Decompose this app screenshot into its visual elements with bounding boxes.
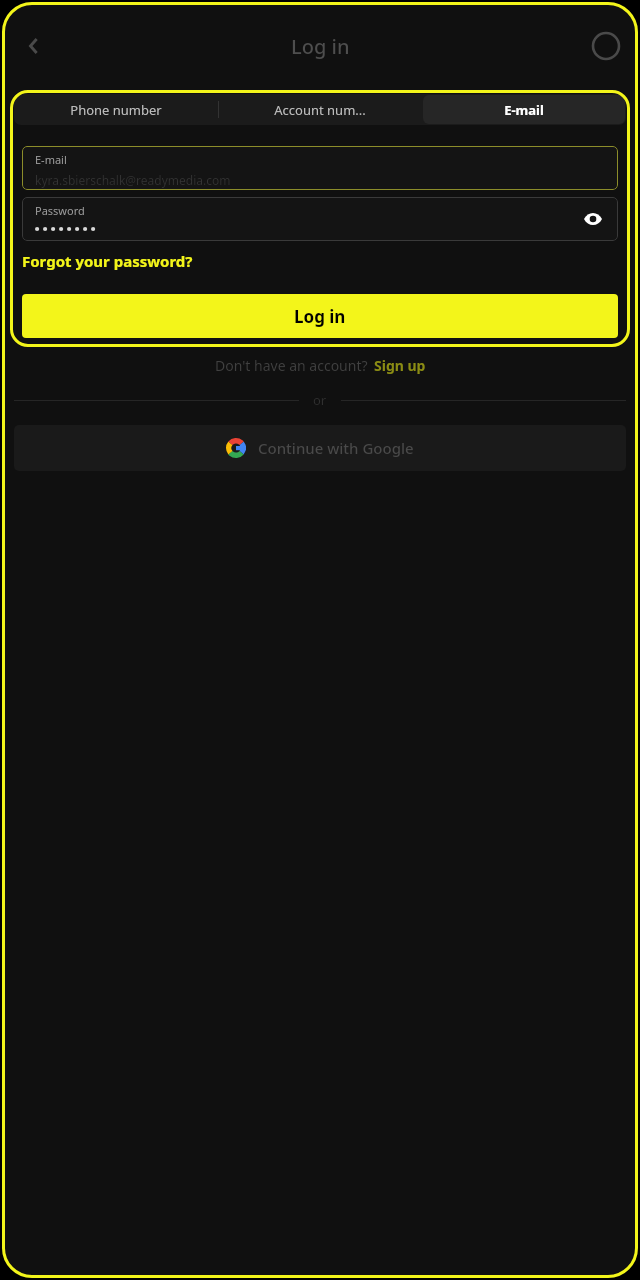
button[interactable]: Log in: [22, 294, 618, 338]
staticText: Account num...: [274, 101, 366, 119]
staticText: Password: [35, 203, 85, 218]
button[interactable]: Sign up: [374, 356, 426, 375]
button[interactable]: Phone number: [14, 94, 218, 125]
staticText: Log in: [291, 33, 350, 60]
button[interactable]: Forgot your password?: [22, 249, 193, 273]
button[interactable]: E-mail: [423, 95, 625, 124]
button[interactable]: Continue with Google: [14, 425, 626, 471]
button[interactable]: Help: [582, 22, 630, 70]
button[interactable]: Account num...: [218, 94, 422, 125]
staticText: kyra.sbierschalk@readymedia.com: [35, 172, 231, 188]
button[interactable]: Password: [22, 197, 618, 241]
staticText: Continue with Google: [258, 438, 414, 458]
staticText: E-mail: [35, 152, 67, 167]
staticText: E-mail: [504, 101, 544, 119]
staticText: Log in: [294, 305, 346, 328]
staticText: Don't have an account?: [215, 356, 368, 375]
button[interactable]: Show password: [576, 202, 610, 236]
button[interactable]: Back: [10, 22, 58, 70]
staticText: Sign up: [374, 356, 426, 375]
staticText: Forgot your password?: [22, 251, 193, 271]
button[interactable]: E-mail: [22, 146, 618, 190]
staticText: Phone number: [70, 101, 162, 119]
staticText: or: [313, 391, 327, 409]
